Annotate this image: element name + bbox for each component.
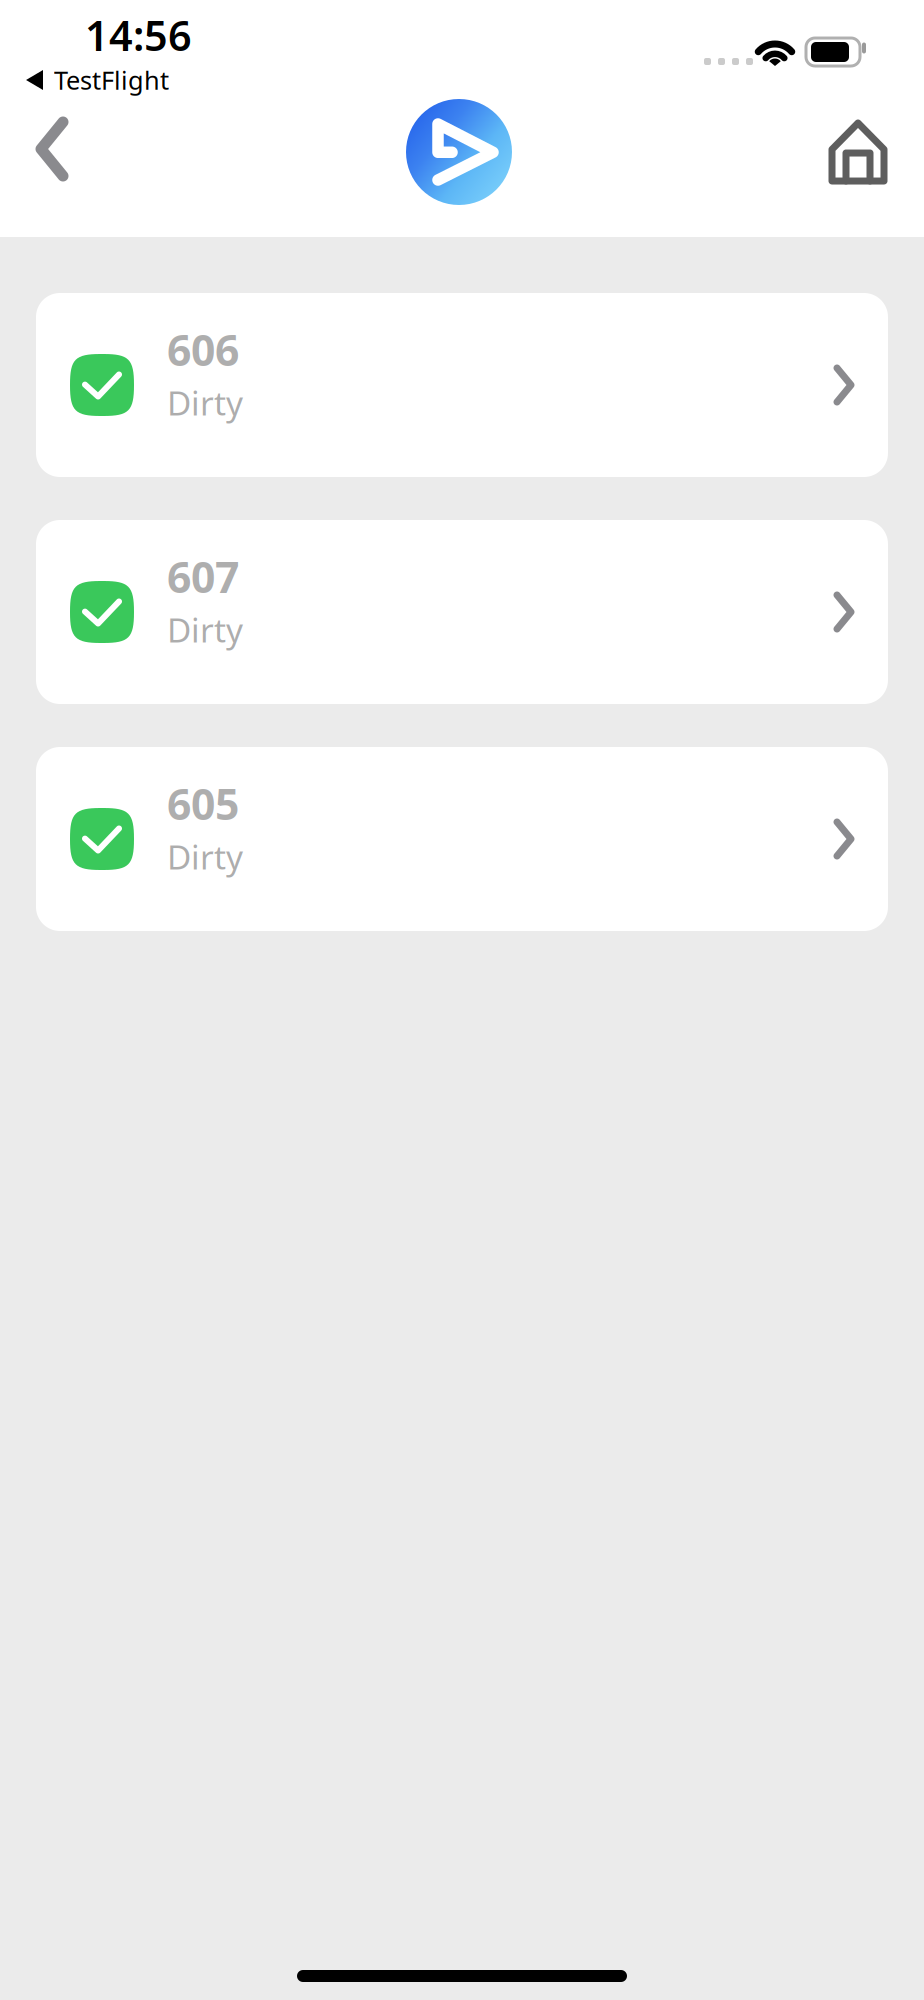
button[interactable]: 606: [36, 293, 888, 477]
staticText: 605: [167, 775, 239, 832]
button[interactable]: 607: [36, 520, 888, 704]
staticText: TestFlight: [54, 63, 169, 97]
staticText: 14:56: [85, 8, 192, 62]
button[interactable]: 605: [36, 747, 888, 931]
staticText: Dirty: [167, 834, 243, 879]
staticText: 607: [167, 548, 239, 605]
staticText: Dirty: [167, 380, 243, 425]
staticText: 606: [167, 321, 239, 378]
button[interactable]: Back: [13, 98, 91, 200]
button[interactable]: Home: [804, 99, 912, 205]
staticText: Dirty: [167, 607, 243, 652]
